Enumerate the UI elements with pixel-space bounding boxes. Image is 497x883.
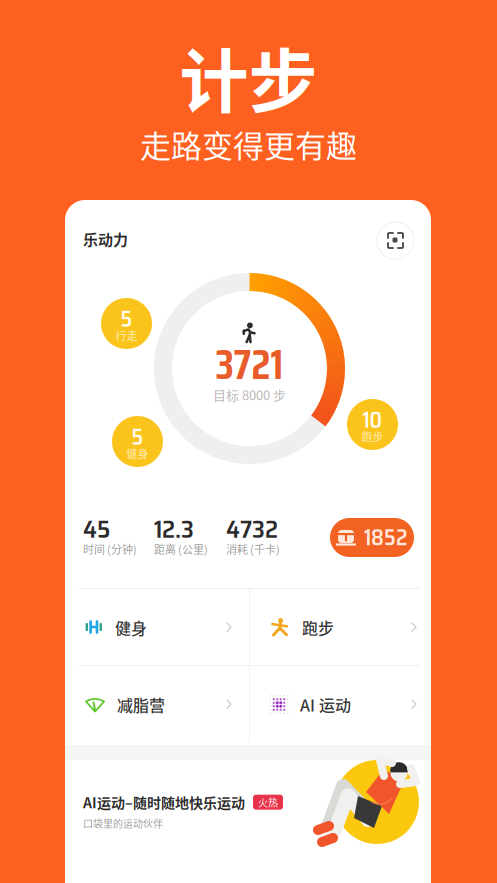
button[interactable]: AI运动–随时随地快乐运动 [65, 760, 431, 883]
staticText: 减脂营 [117, 693, 165, 716]
staticText: 4732 [226, 509, 278, 549]
staticText: AI 运动 [300, 693, 351, 716]
staticText: 消耗 (千卡) [226, 541, 280, 557]
staticText: AI运动–随时随地快乐运动 [83, 792, 245, 812]
staticText: 走路变得更有趣 [140, 122, 357, 166]
staticText: 火热 [258, 795, 278, 809]
staticText: 时间 (分钟) [83, 541, 137, 557]
staticText: 口袋里的运动伙伴 [83, 816, 163, 830]
staticText: 1852 [364, 520, 408, 555]
staticText: 3721 [215, 331, 283, 397]
button[interactable]: 5 [112, 416, 163, 467]
staticText: 目标 8000 步 [213, 385, 286, 404]
staticText: 健身 [115, 616, 147, 639]
button[interactable]: 5 [101, 298, 152, 349]
button[interactable]: 跑步 [250, 589, 434, 666]
button[interactable]: 健身 [65, 589, 249, 666]
button[interactable]: 减脂营 [65, 666, 249, 743]
staticText: 健身 [126, 445, 148, 461]
staticText: 行走 [115, 327, 137, 343]
staticText: 5 [131, 420, 143, 454]
staticText: 5 [120, 302, 132, 336]
staticText: 乐动力 [83, 228, 128, 250]
staticText: 跑步 [361, 428, 383, 444]
button[interactable]: 1852 [330, 518, 414, 557]
staticText: 计步 [179, 27, 317, 127]
button[interactable]: Scan code [377, 222, 414, 259]
button[interactable]: 10 [347, 399, 398, 450]
staticText: 10 [362, 403, 382, 437]
button[interactable]: AI 运动 [250, 666, 434, 743]
staticText: 12.3 [154, 509, 194, 549]
staticText: 跑步 [302, 616, 334, 639]
staticText: 距离 (公里) [154, 541, 208, 557]
staticText: 45 [83, 509, 110, 549]
